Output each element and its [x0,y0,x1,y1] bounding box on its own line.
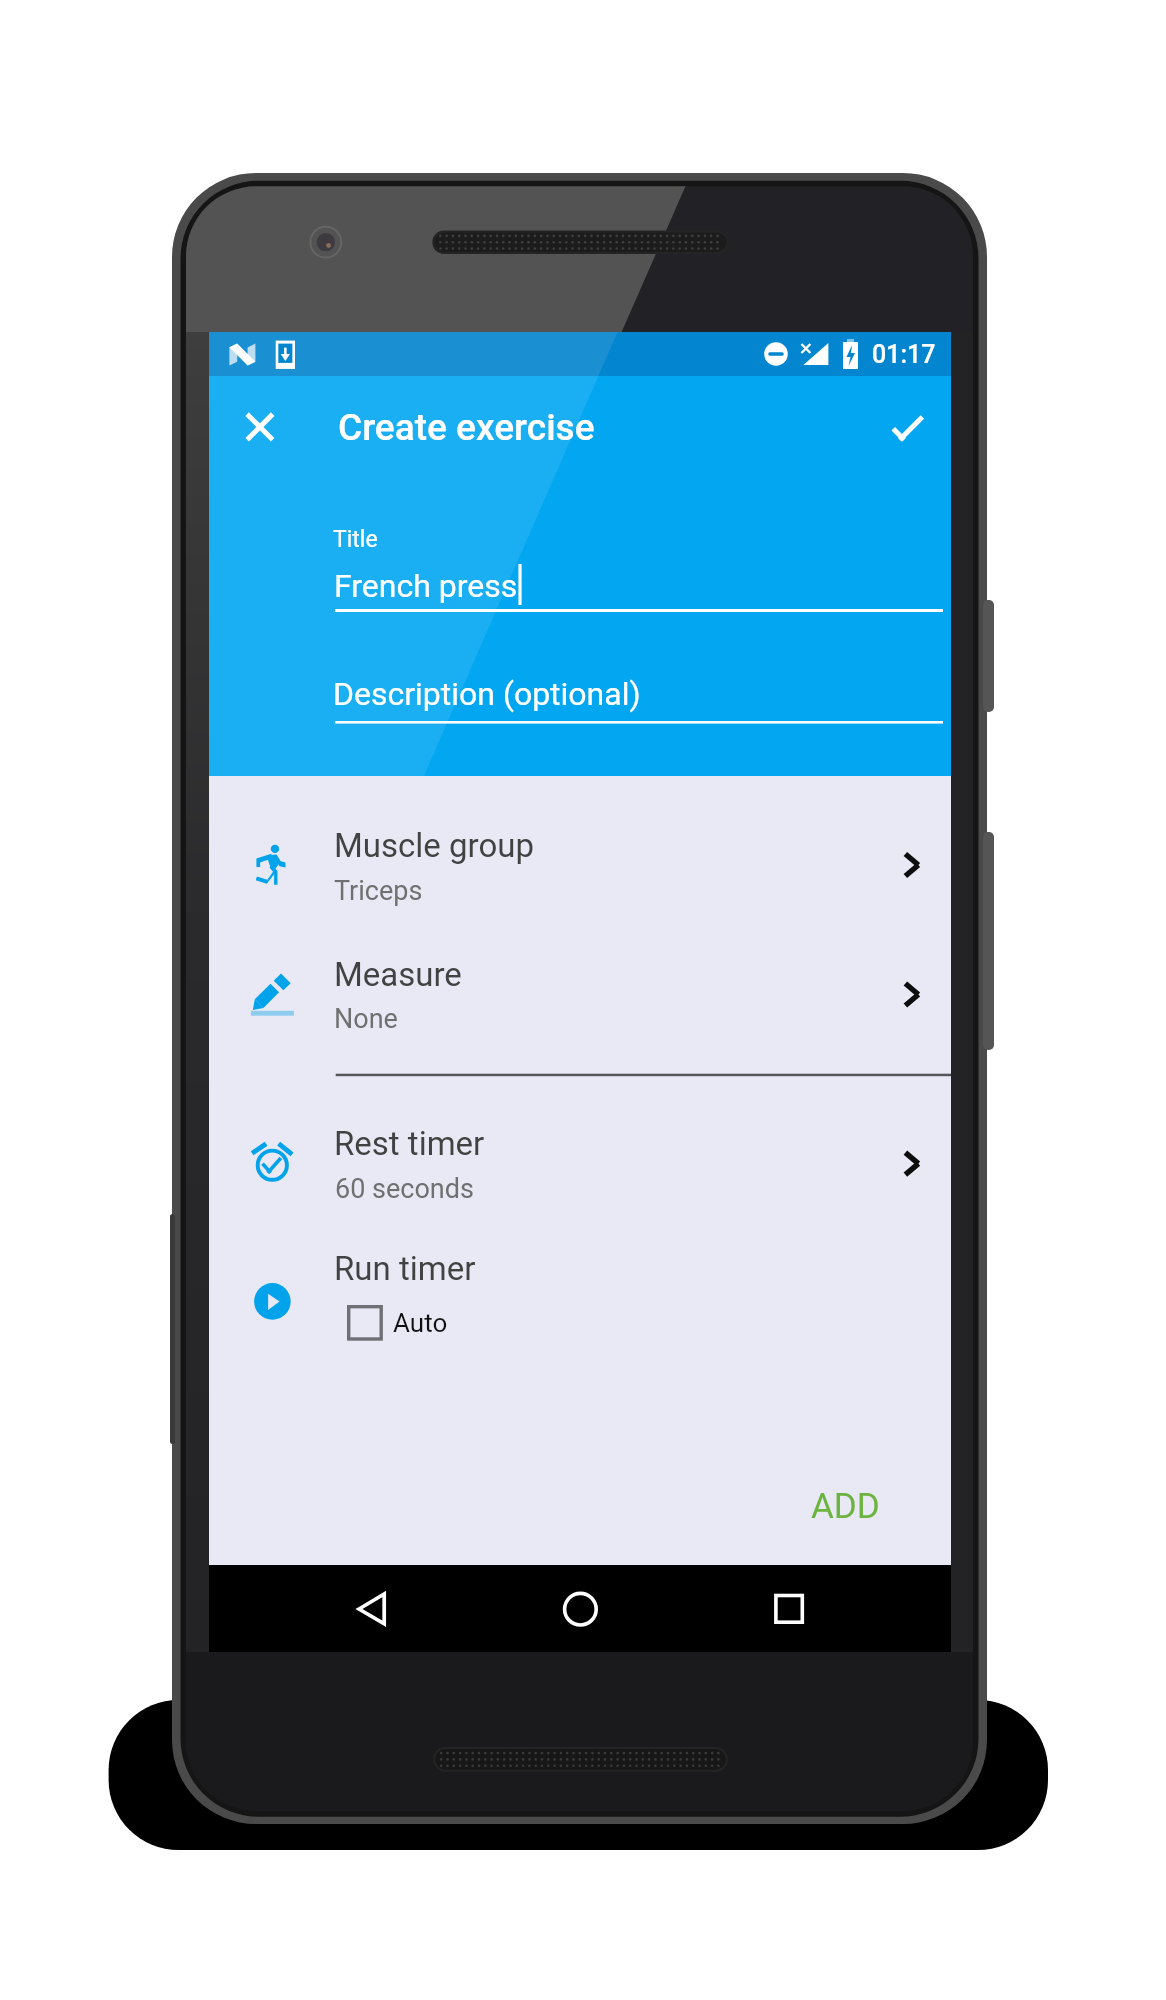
staticText: Description (optional) [333,675,641,713]
button[interactable]: Recents [754,1574,824,1644]
staticText: None [334,1003,398,1035]
button[interactable]: Confirm [865,379,961,475]
button[interactable] [209,1072,951,1220]
button[interactable]: Back [327,1574,397,1644]
staticText: Auto [393,1308,448,1338]
button[interactable]: Home [545,1574,615,1644]
staticText: 01:17 [872,340,936,369]
staticText: Measure [334,955,462,994]
button[interactable]: Close [212,379,308,475]
staticText: Create exercise [338,406,595,449]
staticText: ADD [811,1486,880,1527]
staticText: Rest timer [334,1124,485,1163]
button[interactable] [343,1294,483,1342]
staticText: Triceps [334,875,423,907]
staticText: 60 seconds [335,1173,474,1205]
staticText: Muscle group [334,826,534,865]
button[interactable] [209,796,951,926]
staticText: Run timer [334,1249,476,1288]
button[interactable] [209,926,951,1072]
staticText: Title [333,526,378,553]
button[interactable] [784,1470,924,1558]
staticText: French press [334,567,518,605]
